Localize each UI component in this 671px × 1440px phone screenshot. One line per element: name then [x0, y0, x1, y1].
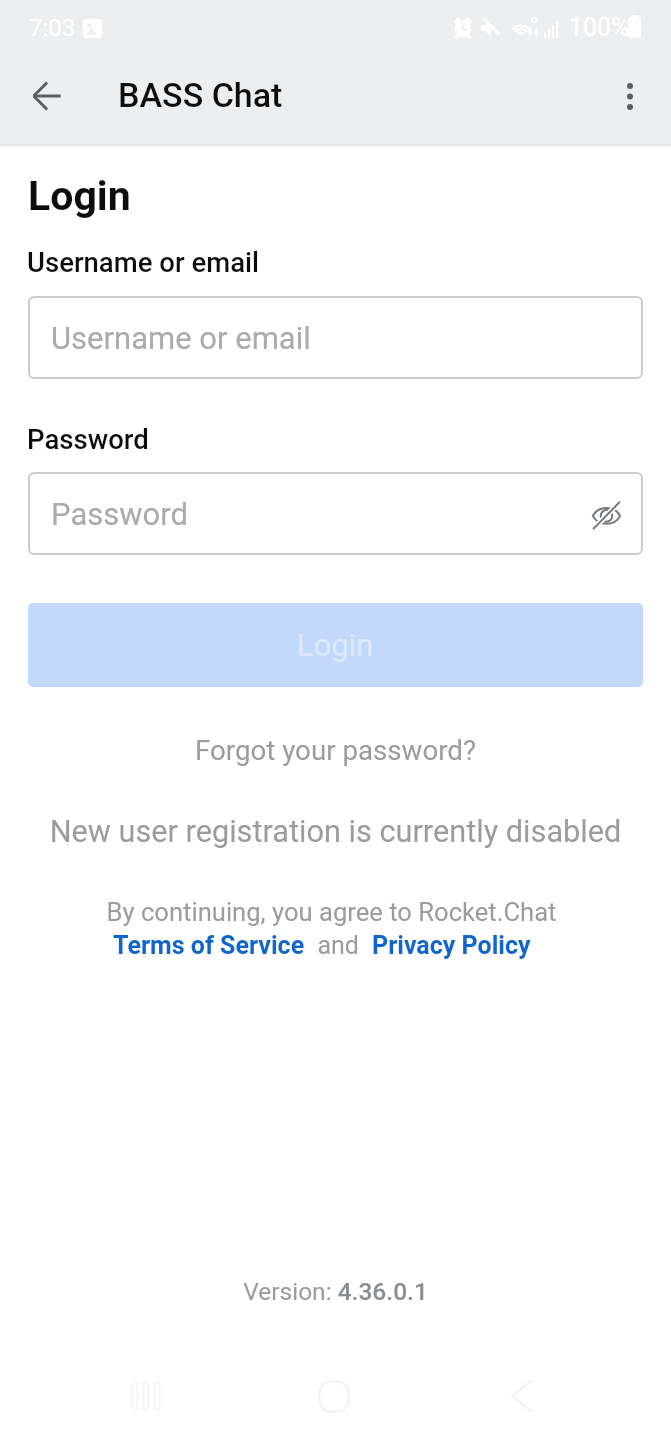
button[interactable]: Terms of Service	[113, 931, 305, 960]
staticText: Password	[27, 423, 149, 455]
staticText: Forgot your password?	[195, 734, 477, 766]
button[interactable]: Forgot your password?	[191, 730, 481, 770]
button[interactable]: Username or email	[28, 296, 643, 379]
staticText: Terms of Service	[113, 931, 305, 960]
staticText: Privacy Policy	[372, 931, 531, 960]
staticText: Username or email	[51, 320, 311, 356]
staticText: and	[305, 931, 372, 960]
button[interactable]: Navigate up	[16, 66, 76, 126]
staticText: By continuing, you agree to Rocket.Chat	[0, 897, 667, 927]
staticText: 7:03	[29, 14, 76, 42]
staticText: 100%	[569, 13, 630, 42]
staticText: Login	[28, 172, 131, 220]
button[interactable]: Password	[28, 472, 643, 555]
button[interactable]: Show password	[580, 488, 632, 540]
staticText: Password	[51, 496, 188, 532]
button[interactable]: Privacy Policy	[372, 931, 531, 960]
button[interactable]: More options	[602, 68, 658, 124]
staticText: Username or email	[27, 246, 260, 278]
staticText: Login	[297, 627, 374, 663]
staticText: New user registration is currently disab…	[0, 814, 671, 850]
staticText: BASS Chat	[118, 75, 283, 115]
staticText: Version: 4.36.0.1	[0, 1277, 671, 1306]
